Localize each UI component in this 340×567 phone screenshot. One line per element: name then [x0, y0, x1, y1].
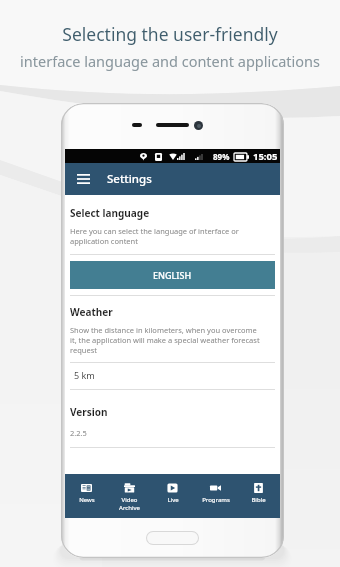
staticText: Version	[70, 405, 108, 419]
staticText: Here you can select the language of inte…	[70, 226, 275, 246]
button[interactable]: Bible	[237, 474, 280, 504]
staticText: Selecting the user-friendly	[62, 22, 278, 46]
staticText: Programs	[202, 496, 230, 504]
staticText: Settings	[107, 171, 152, 187]
staticText: 15:05	[253, 150, 278, 163]
button[interactable]: Programs	[194, 474, 237, 504]
button[interactable]: Live	[151, 474, 194, 504]
staticText: interface language and content applicati…	[20, 51, 320, 71]
button[interactable]: News	[65, 474, 108, 504]
staticText: 5 km	[74, 369, 95, 381]
staticText: Show the distance in kilometers, when yo…	[70, 325, 264, 355]
staticText: Weather	[70, 305, 113, 319]
staticText: 89%	[213, 151, 230, 162]
button[interactable]: ENGLISH	[70, 261, 275, 289]
staticText: Select language	[70, 206, 150, 220]
staticText: Video Archive	[119, 496, 140, 512]
staticText: ENGLISH	[153, 269, 192, 281]
staticText: News	[79, 496, 95, 504]
button[interactable]: Video Archive	[108, 474, 151, 512]
staticText: Live	[167, 496, 179, 504]
button[interactable]: Open navigation menu	[73, 169, 93, 189]
staticText: 2.2.5	[70, 428, 87, 438]
staticText: Bible	[251, 496, 266, 504]
